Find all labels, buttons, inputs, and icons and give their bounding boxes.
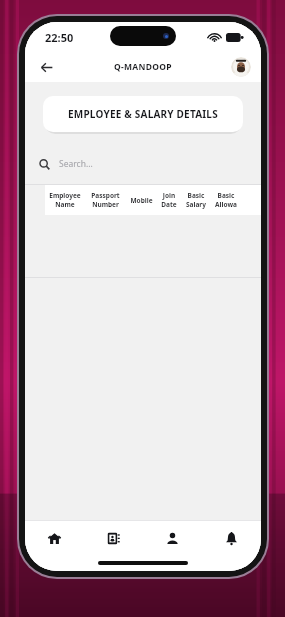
staticText: Mobile [130,196,153,205]
staticText: 22:50 [45,30,74,45]
staticText: Passport Number [91,191,120,209]
staticText: Basic Allowa [215,191,237,209]
button[interactable]: Search... [39,154,243,174]
staticText: Basic Salary [186,191,206,209]
staticText: Join Date [161,191,177,209]
button[interactable]: Contacts [84,521,143,555]
button[interactable]: Back [33,54,59,80]
staticText: Search... [59,158,93,170]
button[interactable]: Employee Name [45,185,261,215]
staticText: Employee Name [49,191,81,209]
button[interactable]: Profile [231,57,251,77]
button[interactable]: Home [25,521,84,555]
button[interactable]: Notifications [202,521,261,555]
staticText: Q-MANDOOP [114,61,172,73]
staticText: EMPLOYEE & SALARY DETAILS [68,107,218,121]
button[interactable]: Profile [143,521,202,555]
button[interactable]: EMPLOYEE & SALARY DETAILS [43,96,243,132]
